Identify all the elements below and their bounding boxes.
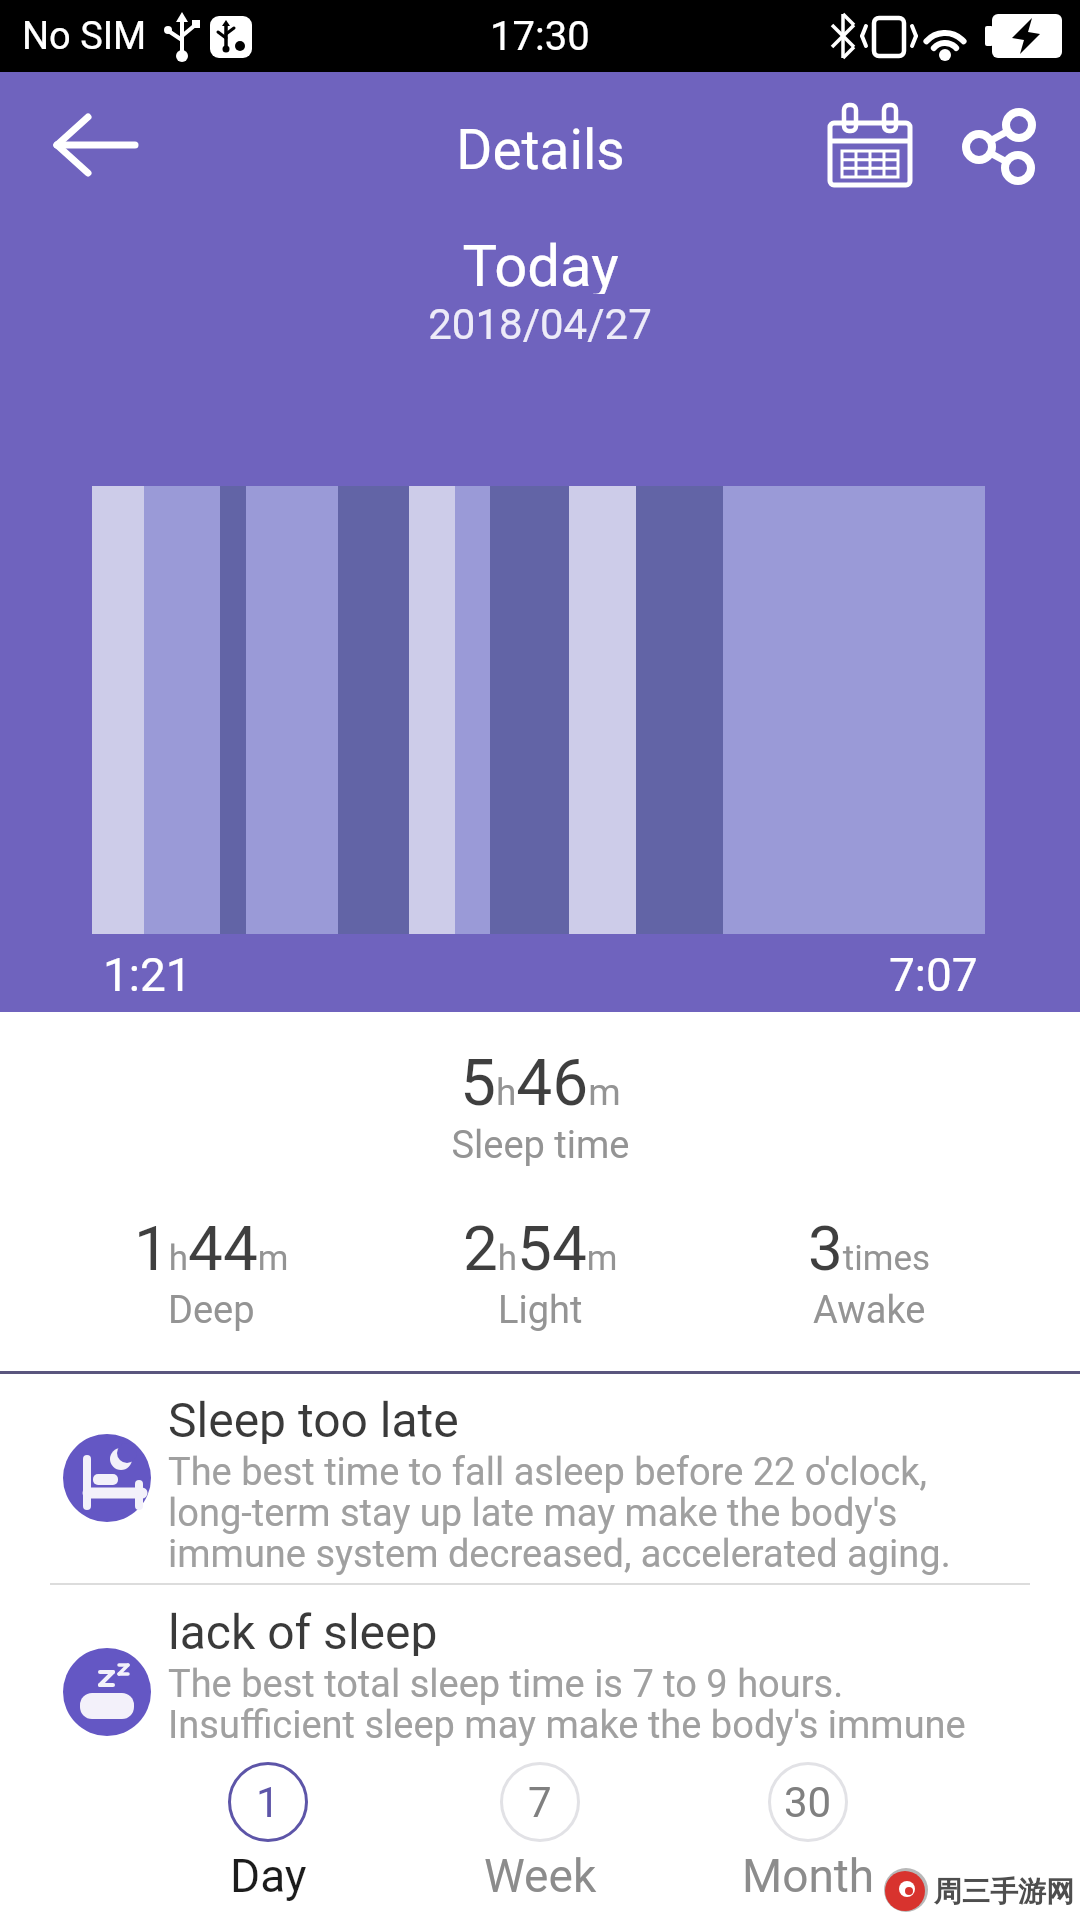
staticText: Week	[484, 1849, 597, 1903]
staticText: Deep	[168, 1288, 255, 1333]
staticText: Sleep time	[451, 1123, 630, 1168]
staticText: 7	[528, 1778, 552, 1827]
staticText: 周三手游网	[934, 1874, 1074, 1909]
staticText: 30	[784, 1778, 832, 1827]
staticText: 1h44m	[134, 1212, 289, 1276]
staticText: lack of sleep	[168, 1604, 438, 1656]
button[interactable]	[958, 104, 1044, 190]
staticText: 2018/04/27	[428, 300, 652, 348]
staticText: Today	[462, 232, 619, 294]
staticText: 3times	[808, 1212, 931, 1276]
button[interactable]	[40, 110, 150, 180]
staticText: 2h54m	[463, 1212, 618, 1276]
staticText: No SIM	[22, 14, 147, 59]
staticText: Month	[742, 1849, 875, 1903]
staticText: 5h46m	[460, 1046, 621, 1116]
staticText: Details	[456, 118, 625, 182]
staticText: Awake	[813, 1288, 926, 1333]
staticText: The best time to fall asleep before 22 o…	[168, 1450, 951, 1577]
button[interactable]	[825, 101, 915, 191]
staticText: 1	[256, 1778, 280, 1827]
staticText: 17:30	[490, 13, 590, 60]
button[interactable]: 7	[460, 1756, 620, 1908]
staticText: Sleep too late	[168, 1392, 459, 1444]
staticText: Light	[498, 1288, 583, 1333]
staticText: 1:21	[103, 948, 192, 1000]
button[interactable]: 30	[728, 1756, 888, 1908]
staticText: Day	[230, 1849, 307, 1903]
staticText: 7:07	[889, 948, 978, 1000]
button[interactable]: 1	[188, 1756, 348, 1908]
staticText: The best total sleep time is 7 to 9 hour…	[168, 1662, 966, 1748]
